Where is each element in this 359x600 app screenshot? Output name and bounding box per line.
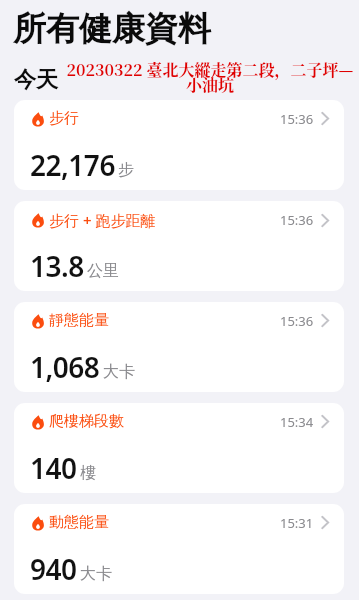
staticText: 15:36 [280, 312, 314, 330]
staticText: 22,176 [30, 146, 115, 184]
button[interactable]: 步行 [14, 100, 344, 190]
staticText: 步行 [49, 109, 79, 128]
button[interactable]: 靜態能量 [14, 302, 344, 392]
staticText: 步 [118, 160, 134, 180]
staticText: 15:36 [280, 110, 314, 128]
staticText: 所有健康資料 [13, 8, 211, 50]
button[interactable]: 動態能量 [14, 504, 344, 594]
staticText: 公里 [87, 261, 119, 281]
staticText: 1,068 [30, 348, 100, 386]
staticText: 15:34 [280, 413, 314, 431]
staticText: 爬樓梯段數 [49, 412, 124, 431]
staticText: 20230322 臺北大縱走第二段，二子坪— 小油坑 [62, 58, 358, 96]
staticText: 動態能量 [49, 513, 109, 532]
staticText: 15:31 [280, 514, 314, 532]
staticText: 13.8 [30, 247, 84, 285]
staticText: 大卡 [103, 362, 135, 382]
staticText: 140 [30, 449, 77, 487]
button[interactable]: 爬樓梯段數 [14, 403, 344, 493]
button[interactable]: 步行 + 跑步距離 [14, 201, 344, 291]
staticText: 靜態能量 [49, 311, 109, 330]
staticText: 今天 [14, 66, 58, 94]
staticText: 940 [30, 550, 77, 588]
staticText: 步行 + 跑步距離 [49, 210, 156, 230]
staticText: 大卡 [80, 564, 112, 584]
staticText: 15:36 [280, 211, 314, 229]
staticText: 樓 [80, 463, 96, 483]
